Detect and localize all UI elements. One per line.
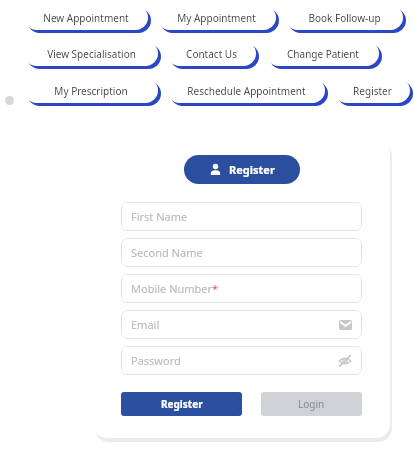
button[interactable]: Register (334, 78, 410, 103)
staticText: Book Follow-up (308, 11, 381, 25)
staticText: Contact Us (186, 47, 237, 61)
button[interactable]: Register (184, 155, 300, 184)
staticText: Email (131, 317, 160, 332)
button[interactable]: Change Patient (266, 41, 379, 66)
staticText: Login (298, 397, 325, 411)
button[interactable]: View Specialisation (24, 41, 158, 66)
staticText: My Prescription (54, 84, 128, 98)
button[interactable]: Email (121, 310, 362, 339)
button[interactable]: My Appointment (157, 5, 276, 30)
button[interactable]: My Prescription (24, 78, 158, 103)
button[interactable]: Book Follow-up (285, 5, 403, 30)
button[interactable]: First Name (121, 202, 362, 231)
button[interactable]: Register (121, 392, 242, 416)
staticText: Register (229, 162, 275, 177)
button[interactable]: Mobile Number* (121, 274, 362, 303)
staticText: Password (131, 353, 181, 368)
staticText: View Specialisation (47, 47, 136, 61)
staticText: My Appointment (177, 11, 256, 25)
staticText: First Name (131, 209, 188, 224)
button[interactable]: Email (337, 317, 353, 333)
staticText: Mobile Number* (131, 281, 219, 296)
staticText: Second Name (131, 245, 203, 260)
button[interactable]: Password (121, 346, 362, 375)
staticText: Reschedule Appointment (187, 84, 306, 98)
button[interactable]: Reschedule Appointment (167, 78, 325, 103)
staticText: Register (161, 397, 203, 411)
button[interactable]: Second Name (121, 238, 362, 267)
staticText: Change Patient (287, 47, 359, 61)
staticText: New Appointment (43, 11, 129, 25)
button[interactable]: Show password (337, 353, 353, 369)
button[interactable]: Contact Us (167, 41, 256, 66)
button[interactable]: New Appointment (24, 5, 148, 30)
staticText: Register (353, 84, 392, 98)
button[interactable]: Login (261, 392, 362, 416)
